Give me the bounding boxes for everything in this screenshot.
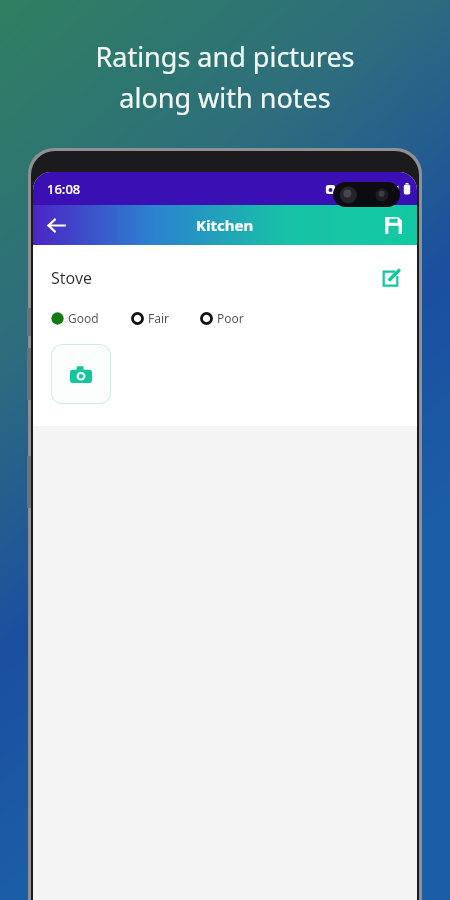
button[interactable]: Good xyxy=(51,310,99,326)
staticText: Ratings and pictures xyxy=(95,38,355,75)
button[interactable]: Save xyxy=(377,209,409,241)
button[interactable]: Edit note xyxy=(375,263,405,293)
staticText: along with notes xyxy=(119,79,331,116)
staticText: Good xyxy=(68,310,99,326)
button[interactable]: Add photo xyxy=(51,344,111,404)
button[interactable]: Back xyxy=(39,208,73,242)
staticText: 16:08 xyxy=(47,180,81,198)
staticText: Kitchen xyxy=(196,215,254,235)
button[interactable]: Poor xyxy=(200,310,244,326)
staticText: Stove xyxy=(51,267,93,289)
button[interactable]: Fair xyxy=(131,310,170,326)
staticText: Fair xyxy=(148,310,170,326)
staticText: Poor xyxy=(217,310,244,326)
